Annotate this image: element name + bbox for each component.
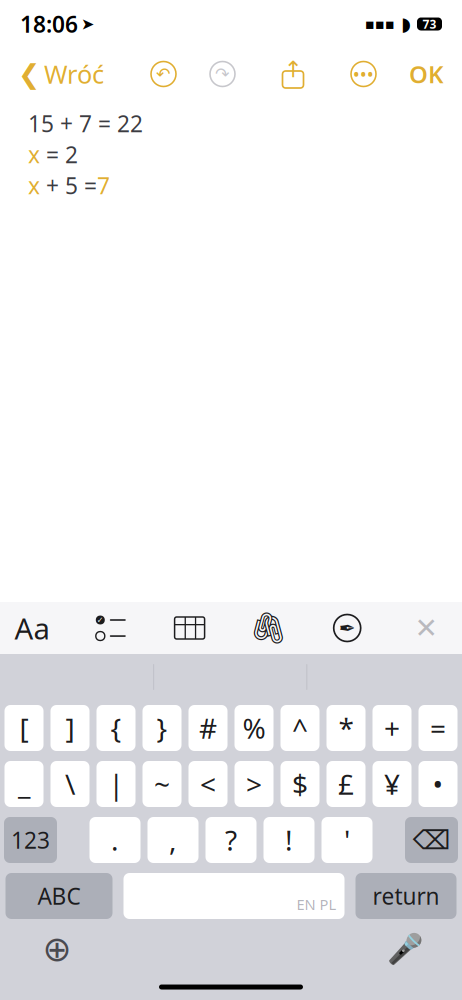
- staticText: $: [292, 765, 308, 803]
- button[interactable]: ¥: [372, 761, 411, 807]
- button[interactable]: >: [234, 761, 273, 807]
- button[interactable]: <: [188, 761, 227, 807]
- button[interactable]: Delete: [405, 817, 458, 863]
- staticText: !: [285, 821, 293, 859]
- staticText: ~: [154, 765, 170, 803]
- staticText: Wróć: [44, 57, 104, 91]
- staticText: ◗: [401, 13, 411, 35]
- staticText: {: [110, 709, 121, 747]
- button[interactable]: 123: [4, 817, 57, 863]
- staticText: >: [246, 765, 262, 803]
- staticText: ⊕: [42, 929, 71, 969]
- button[interactable]: ?: [205, 817, 256, 863]
- staticText: ✒: [339, 617, 356, 639]
- staticText: #: [199, 709, 217, 747]
- staticText: [: [19, 709, 28, 747]
- staticText: OK: [409, 58, 444, 90]
- button[interactable]: ': [321, 817, 372, 863]
- staticText: 73: [422, 16, 436, 32]
- button[interactable]: Dictation: [383, 927, 427, 971]
- staticText: ¥: [384, 765, 400, 803]
- staticText: .: [111, 821, 119, 859]
- staticText: x: [28, 139, 40, 169]
- button[interactable]: Table: [168, 605, 212, 651]
- button[interactable]: {: [96, 705, 135, 751]
- button[interactable]: }: [142, 705, 181, 751]
- staticText: %: [242, 709, 265, 747]
- button[interactable]: ,: [147, 817, 198, 863]
- button[interactable]: Markup: [325, 605, 369, 651]
- staticText: 123: [11, 825, 50, 855]
- button[interactable]: Undo: [148, 58, 179, 89]
- staticText: £: [338, 765, 354, 803]
- staticText: ,: [169, 821, 177, 859]
- staticText: 15 + 7 = 22: [28, 108, 143, 138]
- staticText: \: [65, 765, 75, 803]
- button[interactable]: •: [418, 761, 457, 807]
- button[interactable]: |: [96, 761, 135, 807]
- staticText: 7: [97, 170, 110, 200]
- staticText: •: [432, 765, 443, 803]
- staticText: ↑: [283, 57, 302, 82]
- staticText: ↷: [215, 64, 230, 84]
- staticText: ]: [65, 709, 74, 747]
- staticText: ↶: [156, 64, 171, 84]
- button[interactable]: [: [4, 705, 43, 751]
- button[interactable]: \: [50, 761, 89, 807]
- staticText: Aa: [14, 608, 49, 647]
- button[interactable]: Share: [278, 58, 308, 90]
- staticText: •••: [353, 62, 374, 85]
- staticText: |: [108, 765, 123, 803]
- staticText: <: [200, 765, 216, 803]
- staticText: ^: [292, 709, 308, 747]
- button[interactable]: +: [372, 705, 411, 751]
- button[interactable]: ~: [142, 761, 181, 807]
- button[interactable]: ^: [280, 705, 319, 751]
- staticText: +: [384, 709, 400, 747]
- staticText: ❮: [18, 59, 40, 89]
- staticText: = 2: [40, 139, 78, 169]
- staticText: ➤: [81, 15, 94, 33]
- button[interactable]: *: [326, 705, 365, 751]
- button[interactable]: !: [263, 817, 314, 863]
- button[interactable]: return: [355, 873, 456, 919]
- button[interactable]: #: [188, 705, 227, 751]
- button[interactable]: Next keyboard: [35, 927, 79, 971]
- button[interactable]: Format: [10, 605, 54, 651]
- button[interactable]: Close keyboard: [404, 605, 448, 651]
- button[interactable]: _: [4, 761, 43, 807]
- staticText: }: [156, 709, 167, 747]
- staticText: ✓: [97, 615, 104, 625]
- staticText: ⌫: [412, 825, 450, 855]
- button[interactable]: ABC: [5, 873, 112, 919]
- staticText: *: [338, 709, 353, 747]
- staticText: _: [18, 765, 30, 803]
- button[interactable]: Redo: [207, 58, 238, 89]
- button[interactable]: More: [348, 58, 379, 89]
- button[interactable]: £: [326, 761, 365, 807]
- staticText: ?: [225, 821, 237, 859]
- staticText: EN PL: [296, 894, 336, 914]
- button[interactable]: $: [280, 761, 319, 807]
- button[interactable]: =: [418, 705, 457, 751]
- staticText: 🖇: [249, 610, 288, 645]
- button[interactable]: Checklist: [89, 605, 133, 651]
- staticText: x: [28, 170, 40, 200]
- button[interactable]: OK: [405, 52, 448, 96]
- staticText: ▪▪▪: [365, 16, 395, 32]
- staticText: ': [344, 821, 350, 859]
- button[interactable]: %: [234, 705, 273, 751]
- staticText: + 5 =: [40, 170, 97, 200]
- staticText: ABC: [37, 881, 80, 911]
- button[interactable]: ❮: [14, 52, 108, 96]
- staticText: 18:06: [20, 9, 78, 39]
- staticText: ✕: [414, 612, 437, 644]
- staticText: 🎤: [386, 932, 423, 966]
- button[interactable]: Attach: [246, 605, 290, 651]
- button[interactable]: .: [89, 817, 140, 863]
- button[interactable]: space: [123, 873, 344, 919]
- button[interactable]: ]: [50, 705, 89, 751]
- staticText: =: [430, 709, 446, 747]
- staticText: return: [372, 881, 439, 911]
